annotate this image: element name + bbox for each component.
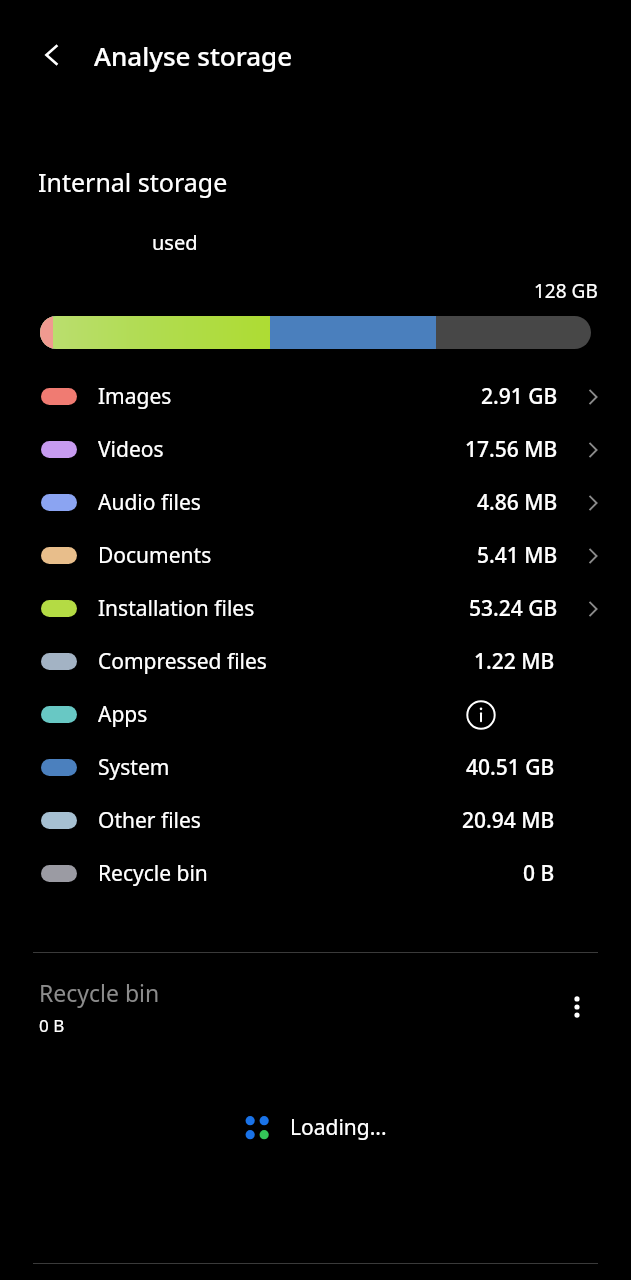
staticText: 20.94 MB — [462, 806, 555, 835]
button[interactable]: System — [0, 741, 631, 794]
staticText: Compressed files — [98, 647, 267, 676]
staticText: Internal storage — [38, 165, 228, 199]
button[interactable]: Videos — [0, 423, 631, 476]
staticText: Other files — [98, 806, 201, 835]
staticText: 0 B — [523, 859, 555, 888]
staticText: Images — [98, 382, 172, 411]
button[interactable]: Compressed files — [0, 635, 631, 688]
staticText: 1.22 MB — [474, 647, 555, 676]
button[interactable]: Apps — [0, 688, 631, 741]
button[interactable]: More options — [553, 983, 601, 1031]
staticText: 0 B — [39, 1014, 65, 1037]
staticText: Videos — [98, 435, 164, 464]
staticText: 5.41 MB — [477, 541, 558, 570]
staticText: 17.56 MB — [465, 435, 558, 464]
button[interactable]: Images — [0, 370, 631, 423]
button[interactable]: Other files — [0, 794, 631, 847]
staticText: used — [152, 229, 198, 256]
staticText: 40.51 GB — [466, 753, 555, 782]
button[interactable]: Audio files — [0, 476, 631, 529]
other: Open Installation files — [578, 594, 608, 624]
button[interactable]: Installation files — [0, 582, 631, 635]
staticText: Audio files — [98, 488, 201, 517]
staticText: 4.86 MB — [477, 488, 558, 517]
other: Open Audio files — [578, 488, 608, 518]
staticText: 128 GB — [534, 278, 598, 304]
button[interactable]: Apps info — [459, 693, 503, 737]
staticText: Installation files — [98, 594, 255, 623]
staticText: Loading... — [290, 1113, 387, 1142]
other: Open Images — [578, 382, 608, 412]
other: Open Documents — [578, 541, 608, 571]
staticText: Recycle bin — [39, 977, 160, 1008]
button[interactable]: Documents — [0, 529, 631, 582]
button[interactable]: Back — [26, 29, 78, 81]
button[interactable]: Recycle bin — [0, 953, 631, 1061]
staticText: Analyse storage — [94, 38, 293, 73]
other: Open Videos — [578, 435, 608, 465]
staticText: Apps — [98, 700, 148, 729]
staticText: Recycle bin — [98, 859, 208, 888]
staticText: 2.91 GB — [481, 382, 558, 411]
button[interactable]: Recycle bin — [0, 847, 631, 900]
staticText: 53.24 GB — [469, 594, 558, 623]
staticText: Documents — [98, 541, 212, 570]
staticText: System — [98, 753, 170, 782]
